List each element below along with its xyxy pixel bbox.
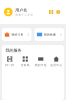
- staticText: 我的服务: [5, 48, 21, 53]
- staticText: 我的订单: [11, 33, 23, 36]
- button[interactable]: 扫一扫: [2, 56, 17, 67]
- staticText: 用户名: [15, 8, 27, 12]
- button[interactable]: Settings: [55, 8, 62, 16]
- staticText: 扫一扫: [5, 63, 14, 67]
- button[interactable]: 用户名: [4, 8, 33, 16]
- button[interactable]: 我的收藏: [34, 28, 64, 41]
- staticText: 查看个人主页: [15, 13, 33, 16]
- staticText: 我的卡包: [35, 63, 47, 67]
- staticText: 付款码: [21, 63, 30, 67]
- staticText: 我的收藏: [44, 33, 56, 36]
- button[interactable]: 付款码: [17, 56, 33, 67]
- button[interactable]: 我的订单: [2, 28, 31, 41]
- button[interactable]: 我的卡包: [33, 56, 48, 67]
- button[interactable]: Scan: [48, 8, 55, 15]
- staticText: 会员中心: [50, 63, 62, 67]
- button[interactable]: 会员中心: [48, 56, 64, 67]
